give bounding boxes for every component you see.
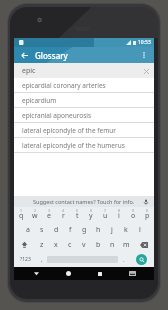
- button[interactable]: Search: [136, 254, 147, 265]
- button[interactable]: Backspace: [133, 237, 154, 252]
- button[interactable]: v: [77, 237, 91, 252]
- button[interactable]: Suggest contact names? Touch for info.: [14, 196, 154, 207]
- button[interactable]: Clear search: [141, 66, 151, 76]
- button[interactable]: 2: [28, 207, 42, 222]
- button[interactable]: 9: [126, 207, 140, 222]
- button[interactable]: 8: [112, 207, 126, 222]
- staticText: b: [96, 240, 101, 250]
- staticText: l: [139, 225, 141, 235]
- staticText: o: [131, 211, 136, 221]
- button[interactable]: 3: [42, 207, 56, 222]
- button[interactable]: Recents: [84, 267, 116, 280]
- staticText: lateral epicondyle of the humerus: [22, 141, 125, 150]
- button[interactable]: 5: [70, 207, 84, 222]
- button[interactable]: Switch keyboard: [116, 267, 148, 280]
- button[interactable]: Hide keyboard: [20, 267, 52, 280]
- staticText: x: [54, 240, 58, 250]
- staticText: 1: [20, 208, 23, 213]
- staticText: z: [40, 240, 44, 250]
- staticText: epicardial coronary arteries: [22, 81, 106, 90]
- staticText: 2: [34, 208, 37, 213]
- button[interactable]: lateral epicondyle of the femur: [14, 123, 154, 138]
- staticText: i: [118, 211, 120, 221]
- button[interactable]: m: [119, 237, 133, 252]
- staticText: r: [62, 211, 65, 221]
- button[interactable]: lateral epicondyle of the humerus: [14, 138, 154, 153]
- staticText: 6: [90, 208, 93, 213]
- button[interactable]: 7: [98, 207, 112, 222]
- staticText: y: [89, 211, 93, 221]
- staticText: g: [82, 225, 87, 235]
- staticText: d: [54, 225, 59, 235]
- button[interactable]: 6: [84, 207, 98, 222]
- button[interactable]: d: [49, 222, 63, 237]
- button[interactable]: epicardium: [14, 93, 154, 108]
- staticText: lateral epicondyle of the femur: [22, 126, 116, 135]
- staticText: n: [110, 240, 115, 250]
- staticText: c: [68, 240, 72, 250]
- button[interactable]: n: [105, 237, 119, 252]
- staticText: 10:53: [138, 39, 151, 46]
- button[interactable]: c: [63, 237, 77, 252]
- staticText: epicranial aponeurosis: [22, 111, 92, 120]
- button[interactable]: Home: [52, 267, 84, 280]
- button[interactable]: ,: [36, 252, 47, 267]
- staticText: 0: [146, 208, 149, 213]
- button[interactable]: 4: [56, 207, 70, 222]
- button[interactable]: l: [133, 222, 147, 237]
- staticText: q: [19, 211, 24, 221]
- button[interactable]: x: [49, 237, 63, 252]
- staticText: w: [32, 211, 38, 221]
- staticText: m: [123, 240, 130, 250]
- staticText: e: [47, 211, 51, 221]
- staticText: p: [145, 211, 150, 221]
- staticText: Suggest contact names? Touch for info.: [33, 198, 135, 205]
- staticText: f: [69, 225, 72, 235]
- staticText: epic: [22, 66, 36, 76]
- staticText: v: [82, 240, 86, 250]
- staticText: 5: [76, 208, 79, 213]
- button[interactable]: f: [63, 222, 77, 237]
- staticText: ,: [41, 256, 43, 264]
- button[interactable]: .: [118, 252, 129, 267]
- button[interactable]: s: [35, 222, 49, 237]
- staticText: k: [124, 225, 128, 235]
- staticText: .: [123, 256, 125, 264]
- button[interactable]: k: [119, 222, 133, 237]
- staticText: 7: [104, 208, 107, 213]
- button[interactable]: j: [105, 222, 119, 237]
- button[interactable]: g: [77, 222, 91, 237]
- button[interactable]: ?123: [14, 252, 36, 267]
- button[interactable]: epicranial aponeurosis: [14, 108, 154, 123]
- staticText: h: [96, 225, 101, 235]
- button[interactable]: 1: [14, 207, 28, 222]
- button[interactable]: More options: [138, 49, 150, 61]
- staticText: Glossary: [35, 50, 68, 61]
- button[interactable]: b: [91, 237, 105, 252]
- button[interactable]: Back: [18, 49, 30, 61]
- button[interactable]: a: [21, 222, 35, 237]
- button[interactable]: Voice input: [141, 197, 150, 206]
- staticText: ?123: [20, 256, 31, 263]
- staticText: t: [76, 211, 79, 221]
- button[interactable]: z: [35, 237, 49, 252]
- button[interactable]: epic: [14, 63, 154, 78]
- staticText: u: [103, 211, 108, 221]
- staticText: 3: [48, 208, 51, 213]
- staticText: 9: [132, 208, 135, 213]
- staticText: 8: [118, 208, 121, 213]
- button[interactable]: Shift: [14, 237, 35, 252]
- staticText: j: [111, 225, 113, 235]
- button[interactable]: epicardial coronary arteries: [14, 78, 154, 93]
- button[interactable]: h: [91, 222, 105, 237]
- button[interactable]: 0: [140, 207, 154, 222]
- staticText: s: [40, 225, 44, 235]
- staticText: a: [26, 225, 30, 235]
- staticText: 4: [62, 208, 65, 213]
- staticText: epicardium: [22, 96, 57, 105]
